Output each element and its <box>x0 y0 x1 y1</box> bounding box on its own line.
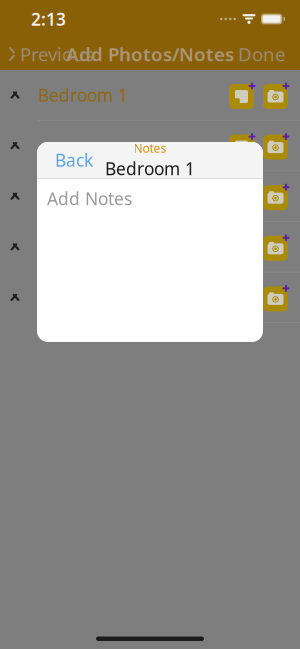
button[interactable]: Add Notes text field <box>37 179 263 342</box>
button[interactable]: Expand section <box>0 225 30 269</box>
staticText: Bedroom 1 <box>38 83 128 106</box>
button[interactable]: Expand section <box>0 174 30 218</box>
button[interactable]: Add photo <box>262 181 292 211</box>
button[interactable]: Done <box>238 37 300 71</box>
button[interactable]: Add photo <box>262 80 292 110</box>
staticText: Previous <box>20 42 94 66</box>
staticText: Add Photos/Notes <box>66 42 234 66</box>
button[interactable]: Back <box>46 141 102 180</box>
staticText: Back <box>55 149 93 172</box>
button[interactable]: Previous <box>0 37 94 71</box>
button[interactable]: Add note <box>228 80 258 110</box>
button[interactable]: Expand section <box>0 124 30 168</box>
button[interactable]: Add photo <box>262 131 292 161</box>
staticText: Notes <box>133 140 166 156</box>
button[interactable]: Add photo <box>262 282 292 312</box>
button[interactable]: Expand section <box>0 73 30 117</box>
button[interactable]: Expand section <box>0 275 30 319</box>
button[interactable]: Add note <box>228 131 258 161</box>
staticText: 2:13 <box>31 7 66 30</box>
staticText: Add Notes <box>47 187 132 210</box>
staticText: Bedroom 1 <box>105 157 195 180</box>
staticText: Done <box>238 42 286 66</box>
button[interactable]: Add photo <box>262 232 292 262</box>
